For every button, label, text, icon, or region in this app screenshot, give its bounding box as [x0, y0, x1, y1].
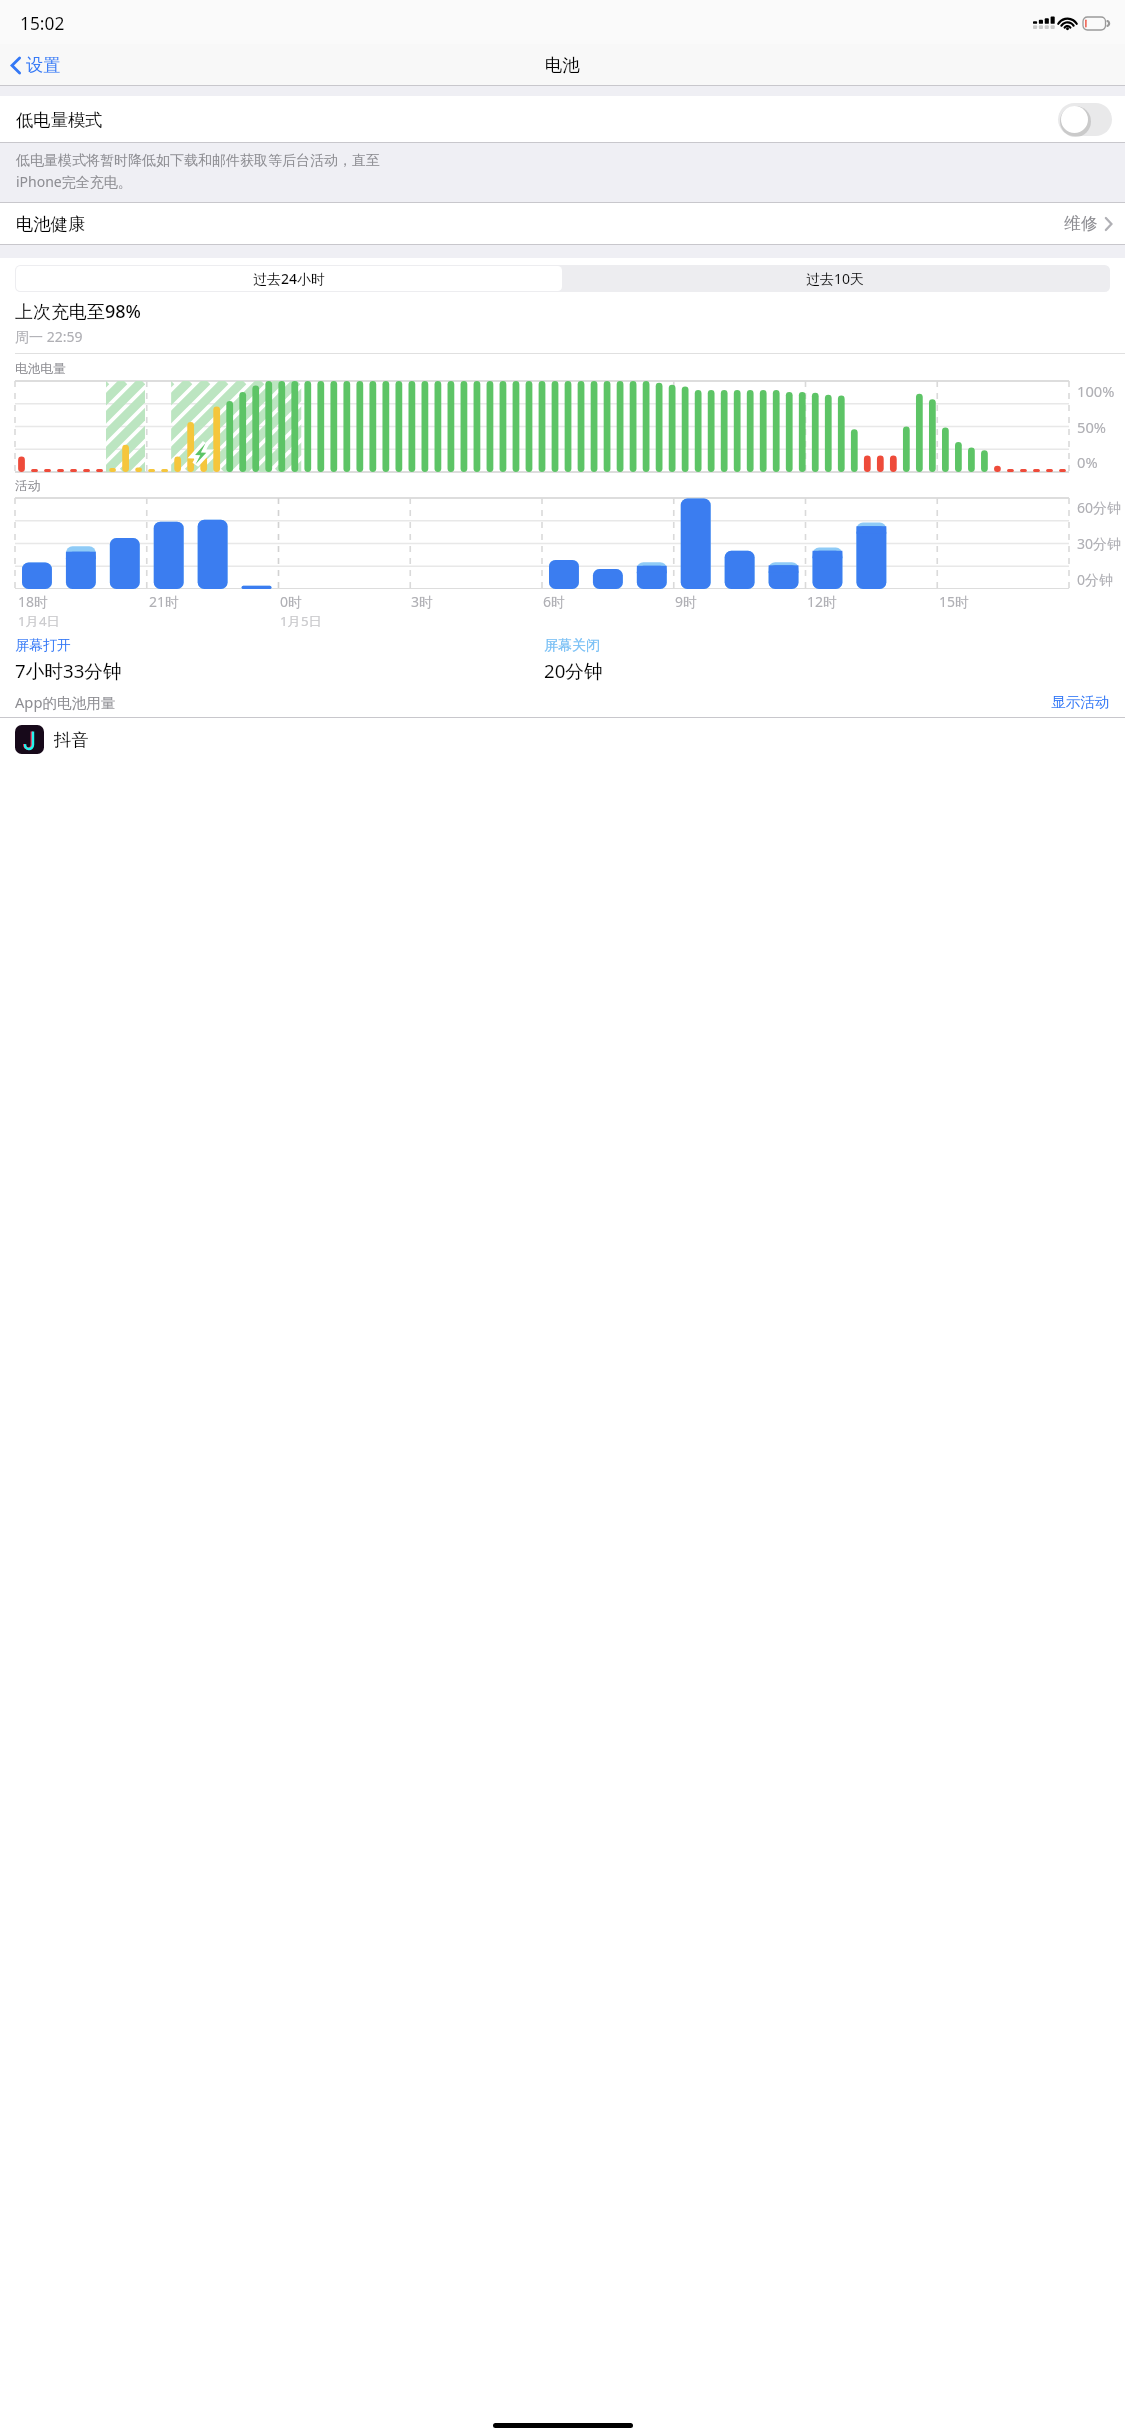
staticText: 0%	[1077, 452, 1098, 472]
staticText: App的电池用量	[15, 692, 116, 712]
staticText: 0分钟	[1077, 570, 1114, 589]
staticText: 100%	[1077, 381, 1115, 401]
staticText: 50%	[1077, 417, 1106, 437]
staticText: 1月4日	[18, 612, 60, 630]
staticText: 20分钟	[544, 658, 603, 683]
staticText: 活动	[15, 478, 41, 494]
staticText: 抖音	[54, 729, 89, 751]
staticText: 30分钟	[1077, 534, 1122, 553]
staticText: 9时	[675, 592, 698, 611]
button[interactable]: 低电量模式	[0, 96, 1125, 143]
staticText: 15时	[939, 592, 970, 611]
staticText: 屏幕关闭	[544, 637, 600, 655]
staticText: 0时	[280, 592, 303, 611]
staticText: 3时	[411, 592, 434, 611]
staticText: 电池电量	[15, 361, 66, 377]
staticText: 低电量模式	[16, 109, 103, 131]
staticText: 屏幕打开	[15, 637, 71, 655]
staticText: 18时	[18, 592, 49, 611]
staticText: 电池健康	[16, 213, 86, 235]
staticText: 60分钟	[1077, 498, 1122, 517]
button[interactable]: 过去24小时	[16, 266, 562, 291]
button[interactable]: 抖音	[0, 718, 1125, 761]
button[interactable]: 过去10天	[562, 266, 1109, 291]
staticText: 过去10天	[806, 269, 865, 288]
button[interactable]: 电池健康	[0, 202, 1125, 245]
staticText: 15:02	[20, 11, 65, 35]
staticText: 21时	[149, 592, 180, 611]
button[interactable]: 显示活动	[1051, 693, 1110, 711]
button[interactable]: 设置	[7, 51, 65, 79]
staticText: 12时	[807, 592, 838, 611]
staticText: 6时	[543, 592, 566, 611]
staticText: 显示活动	[1051, 693, 1110, 711]
staticText: 7小时33分钟	[15, 658, 122, 683]
staticText: 1月5日	[280, 612, 322, 630]
staticText: 电池	[545, 54, 580, 76]
staticText: 维修	[1064, 213, 1098, 234]
staticText: 设置	[26, 54, 61, 76]
staticText: 过去24小时	[253, 269, 326, 288]
staticText: 上次充电至98%	[15, 299, 141, 324]
staticText: 低电量模式将暂时降低如下载和邮件获取等后台活动，直至 iPhone完全充电。	[16, 152, 380, 191]
staticText: 周一 22:59	[15, 327, 83, 346]
